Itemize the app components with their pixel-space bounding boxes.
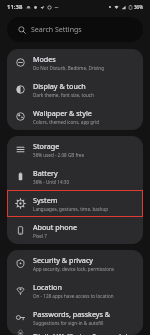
- staticText: Languages, gestures, time, backup: [33, 206, 109, 212]
- staticText: App security, device lock, permissions: [33, 266, 115, 272]
- button[interactable]: Wallpaper & style: [7, 103, 143, 130]
- staticText: System: [33, 195, 58, 205]
- button[interactable]: Security & privacy: [7, 250, 143, 277]
- staticText: Dark theme, font size, touch: [33, 92, 94, 98]
- staticText: Digital Wellbeing & parental controls: [33, 331, 134, 335]
- staticText: 36% - Until 14:30: [33, 179, 70, 185]
- staticText: About phone: [33, 222, 77, 232]
- button[interactable]: Storage: [7, 136, 143, 163]
- staticText: Pixel 7: [33, 233, 47, 239]
- button[interactable]: Digital Wellbeing & parental controls: [7, 331, 143, 335]
- button[interactable]: Display & touch: [7, 76, 143, 103]
- button[interactable]: Modes: [7, 49, 143, 76]
- staticText: Display & touch: [33, 81, 86, 91]
- staticText: 36%: [134, 4, 143, 10]
- staticText: Suggestions for sign-in & autofill: [33, 320, 104, 326]
- staticText: Modes: [33, 54, 56, 64]
- staticText: 56% used - 2.08 GB free: [33, 152, 84, 158]
- staticText: Battery: [33, 168, 58, 178]
- staticText: Colors, themed icons, app grid: [33, 119, 99, 125]
- button[interactable]: Location: [7, 277, 143, 304]
- button[interactable]: Battery: [7, 163, 143, 190]
- button[interactable]: About phone: [7, 217, 143, 244]
- button[interactable]: Search: [7, 17, 143, 42]
- staticText: Search Settings: [31, 25, 82, 35]
- staticText: Passwords, passkeys & accounts: [33, 309, 134, 319]
- staticText: Do Not Disturb, Bedtime, Driving: [33, 65, 105, 71]
- staticText: Location: [33, 282, 62, 292]
- staticText: Security & privacy: [33, 255, 94, 265]
- staticText: On - 128 apps have access to location: [33, 293, 114, 299]
- button[interactable]: System: [7, 190, 143, 217]
- staticText: Storage: [33, 141, 60, 151]
- button[interactable]: Passwords, passkeys & accounts: [7, 304, 143, 331]
- staticText: Wallpaper & style: [33, 108, 92, 118]
- staticText: 11:38: [7, 3, 23, 11]
- other: Search: [18, 26, 26, 34]
